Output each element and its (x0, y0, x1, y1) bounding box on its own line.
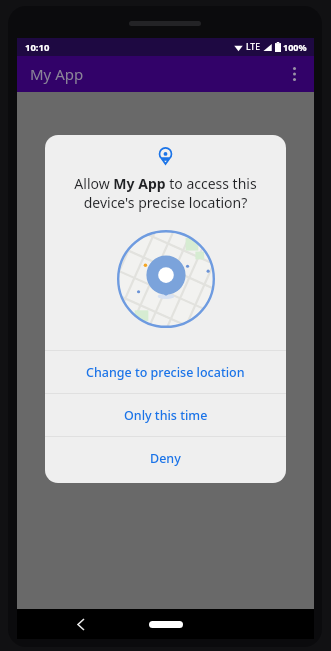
staticText: Only this time (124, 407, 208, 424)
button[interactable]: More options (280, 60, 308, 88)
button[interactable]: Change to precise location (45, 351, 286, 393)
staticText: Deny (150, 450, 181, 467)
staticText: Change to precise location (86, 364, 245, 381)
button[interactable]: Home (149, 621, 183, 628)
staticText: 10:10 (25, 41, 50, 54)
button[interactable]: Back (69, 612, 93, 636)
staticText: My App (30, 64, 84, 84)
staticText: 100% (283, 41, 307, 53)
button[interactable]: Only this time (45, 394, 286, 436)
staticText: Allow My App to access this device's pre… (60, 174, 271, 212)
staticText: LTE (246, 41, 260, 53)
button[interactable]: Deny (45, 437, 286, 479)
